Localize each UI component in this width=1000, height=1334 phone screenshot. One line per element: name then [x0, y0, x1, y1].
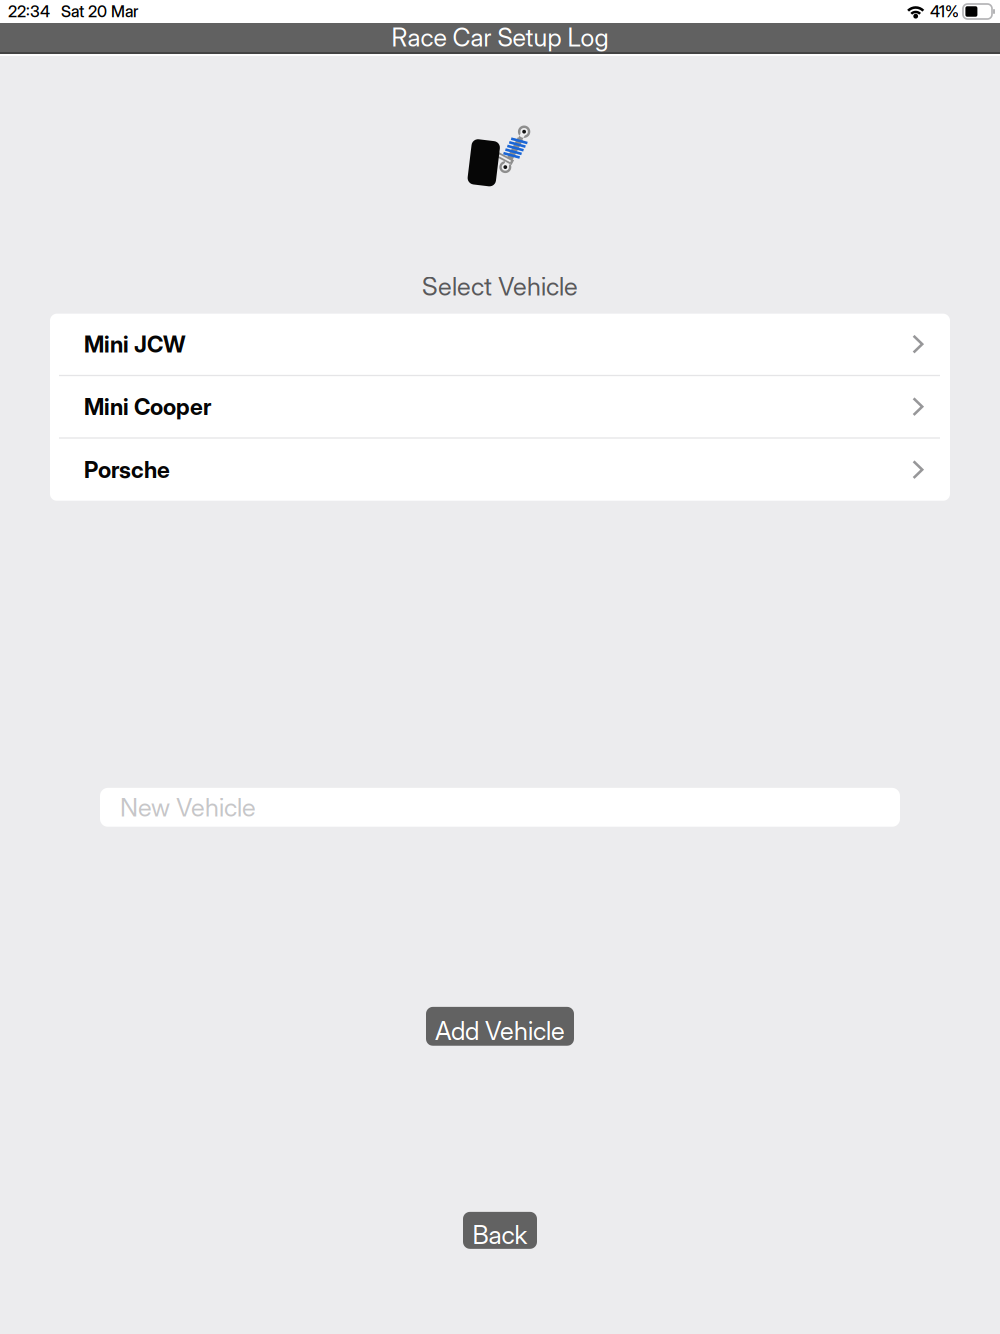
button[interactable]: Add Vehicle — [426, 1007, 574, 1046]
staticText: New Vehicle — [120, 792, 256, 823]
button[interactable]: Porsche — [50, 439, 950, 501]
button[interactable]: Mini JCW — [50, 314, 950, 376]
staticText: Race Car Setup Log — [391, 22, 608, 53]
staticText: Mini JCW — [84, 330, 186, 358]
staticText: Sat 20 Mar — [61, 2, 138, 21]
staticText: Porsche — [84, 456, 170, 483]
button[interactable]: Mini Cooper — [50, 376, 950, 439]
staticText: Select Vehicle — [422, 271, 578, 302]
staticText: Mini Cooper — [84, 393, 211, 420]
button[interactable]: New Vehicle — [100, 788, 900, 827]
staticText: 41% — [930, 2, 959, 21]
staticText: Back — [472, 1219, 527, 1250]
staticText: Add Vehicle — [435, 1015, 565, 1046]
staticText: 22:34 — [8, 2, 50, 21]
button[interactable]: Back — [463, 1212, 537, 1249]
